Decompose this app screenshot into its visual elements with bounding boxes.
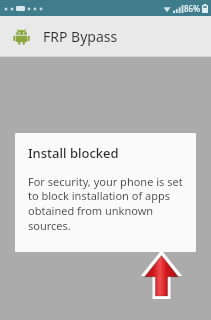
staticText: Install blocked — [28, 144, 119, 162]
other: Tap Settings — [139, 249, 184, 301]
staticText: FRP Bypass — [43, 27, 118, 46]
staticText: For security, your phone is set to block… — [28, 174, 190, 234]
staticText: 86% — [184, 3, 200, 14]
